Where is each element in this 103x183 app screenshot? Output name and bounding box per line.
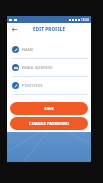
staticText: SAVE [44,106,54,111]
button[interactable]: SAVE [10,102,88,115]
staticText: NAME [22,47,34,52]
button[interactable]: NAME [7,41,91,59]
staticText: POSTCODE [22,83,43,88]
staticText: CHANGE PASSWORD [29,121,69,126]
button[interactable]: EMAIL ADDRESS [7,59,91,77]
staticText: EDIT PROFILE [33,26,66,32]
staticText: EMAIL ADDRESS [22,65,53,70]
staticText: 15:34 [81,18,89,22]
button[interactable]: POSTCODE [7,77,91,95]
button[interactable]: Back [10,25,18,33]
button[interactable]: CHANGE PASSWORD [10,117,88,130]
